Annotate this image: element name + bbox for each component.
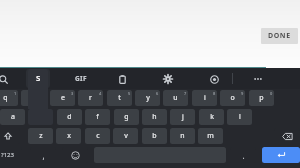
button[interactable]: h <box>142 109 167 125</box>
button[interactable]: x <box>56 128 81 144</box>
staticText: k <box>210 112 214 122</box>
button[interactable]: e <box>50 90 75 106</box>
staticText: c <box>96 131 100 141</box>
staticText: i <box>204 93 206 103</box>
button[interactable]: GIF <box>68 69 94 88</box>
staticText: o <box>230 93 235 103</box>
staticText: DONE <box>268 31 291 41</box>
staticText: . <box>242 150 245 161</box>
staticText: b <box>152 131 157 141</box>
button[interactable]: u <box>163 90 188 106</box>
button[interactable]: DONE <box>261 28 298 44</box>
staticText: u <box>173 93 178 103</box>
button[interactable]: Settings <box>159 70 177 88</box>
button[interactable]: f <box>85 109 110 125</box>
button[interactable]: w <box>21 90 46 106</box>
staticText: r <box>89 93 92 103</box>
staticText: 8 <box>213 91 216 96</box>
staticText: 3 <box>71 91 74 96</box>
staticText: 6 <box>156 91 159 96</box>
button[interactable]: z <box>28 128 53 144</box>
button[interactable]: Stickers <box>26 69 50 88</box>
staticText: h <box>152 112 157 122</box>
button[interactable]: Backspace <box>274 128 300 144</box>
button[interactable]: More options <box>248 69 268 89</box>
button[interactable]: r <box>78 90 103 106</box>
button[interactable]: l <box>227 109 252 125</box>
button[interactable]: Shift <box>0 128 20 144</box>
button[interactable]: j <box>170 109 195 125</box>
staticText: GIF <box>75 74 88 83</box>
button[interactable]: n <box>170 128 195 144</box>
staticText: n <box>180 131 185 141</box>
button[interactable]: Clipboard <box>113 70 131 88</box>
staticText: g <box>124 112 129 122</box>
staticText: 5 <box>128 91 131 96</box>
staticText: p <box>259 93 264 103</box>
button[interactable]: Enter <box>262 147 300 163</box>
staticText: e <box>61 93 65 103</box>
button[interactable]: k <box>199 109 224 125</box>
staticText: q <box>3 93 8 103</box>
button[interactable]: y <box>135 90 160 106</box>
staticText: 0 <box>270 91 273 96</box>
button[interactable]: m <box>198 128 223 144</box>
button[interactable]: a <box>0 109 25 125</box>
button[interactable]: Emoji <box>62 147 88 163</box>
staticText: 7 <box>184 91 187 96</box>
button[interactable]: g <box>114 109 139 125</box>
staticText: z <box>39 131 43 141</box>
staticText: f <box>96 112 99 122</box>
staticText: , <box>42 150 45 161</box>
staticText: a <box>11 112 15 122</box>
button[interactable]: t <box>107 90 132 106</box>
button[interactable]: Themes <box>205 70 223 88</box>
button[interactable]: q <box>0 90 18 106</box>
button[interactable]: , <box>30 147 56 163</box>
button[interactable]: c <box>85 128 110 144</box>
button[interactable]: Search <box>0 70 12 88</box>
button[interactable]: v <box>113 128 138 144</box>
button[interactable]: o <box>220 90 245 106</box>
button[interactable]: b <box>142 128 167 144</box>
button[interactable]: p <box>249 90 274 106</box>
button[interactable]: ?123 <box>0 147 22 163</box>
staticText: t <box>118 93 121 103</box>
staticText: l <box>239 112 241 122</box>
button[interactable]: . <box>230 147 256 163</box>
staticText: m <box>207 131 214 141</box>
staticText: x <box>67 131 71 141</box>
button[interactable]: d <box>57 109 82 125</box>
staticText: s <box>36 71 41 83</box>
staticText: 4 <box>99 91 102 96</box>
staticText: y <box>146 93 150 103</box>
staticText: d <box>67 112 72 122</box>
button[interactable]: i <box>192 90 217 106</box>
staticText: 1 <box>14 91 17 96</box>
staticText: j <box>182 112 184 122</box>
staticText: v <box>124 131 128 141</box>
staticText: ?123 <box>1 151 14 159</box>
staticText: 9 <box>241 91 244 96</box>
